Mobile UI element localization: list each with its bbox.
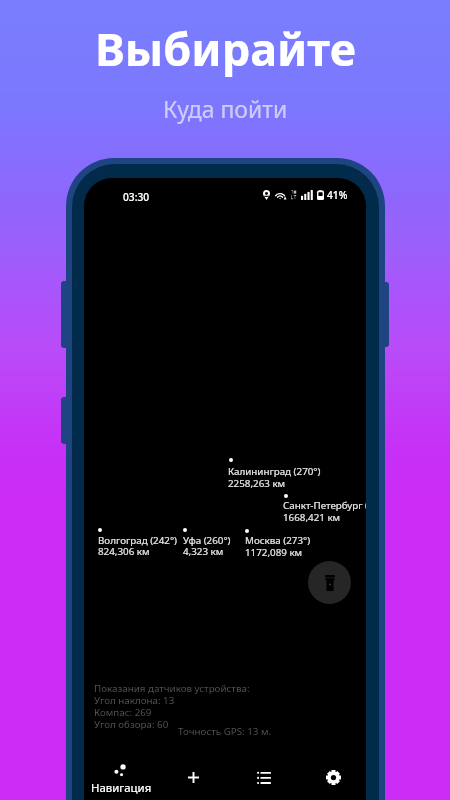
staticText: 41% (327, 188, 348, 202)
staticText: Показания датчиков устройства: (94, 682, 250, 695)
staticText: Навигация (91, 780, 152, 796)
staticText: Угол наклона: 13 (94, 694, 175, 707)
staticText: Компас: 269 (94, 706, 152, 719)
staticText: 4,323 км (183, 545, 224, 558)
button[interactable]: List (241, 756, 287, 798)
button[interactable]: Settings (310, 756, 356, 798)
button[interactable]: Add (170, 756, 216, 798)
button[interactable]: Навигация (90, 761, 152, 800)
staticText: Калининград (270°) (228, 465, 321, 478)
staticText: Куда пойти (163, 93, 288, 124)
button[interactable]: Flashlight (308, 561, 351, 604)
staticText: Угол обзора: 60 (94, 718, 169, 731)
staticText: Москва (273°) (245, 534, 311, 547)
staticText: Санкт-Петербург (3 (283, 499, 366, 512)
staticText: 03:30 (123, 190, 150, 204)
staticText: 2258,263 км (228, 477, 286, 490)
staticText: Волгоград (242°) (98, 534, 178, 547)
staticText: 824,306 км (98, 545, 150, 558)
staticText: Точность GPS: 13 м. (178, 725, 272, 738)
staticText: 1172,089 км (245, 546, 303, 559)
staticText: 1668,421 км (283, 511, 341, 524)
staticText: Выбирайте (95, 18, 356, 79)
staticText: Уфа (260°) (183, 534, 231, 547)
